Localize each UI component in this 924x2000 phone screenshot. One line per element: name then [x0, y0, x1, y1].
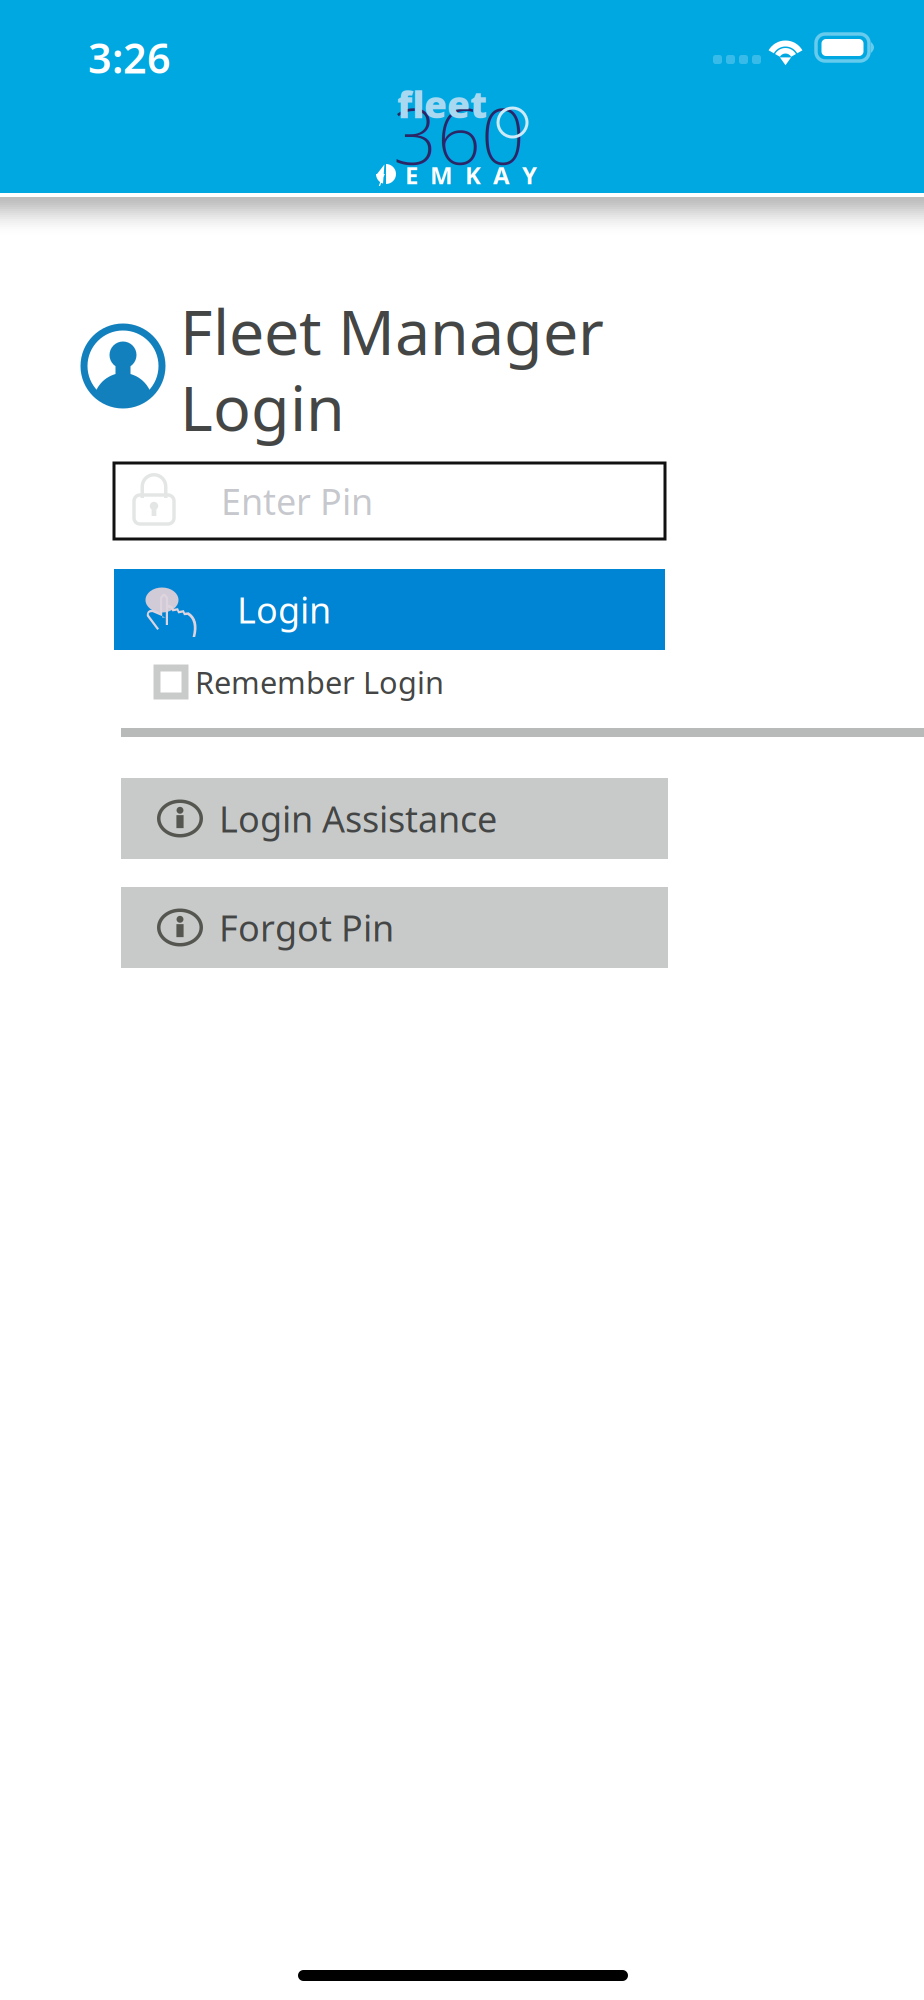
- staticText: E M K A Y: [405, 159, 537, 191]
- staticText: Enter Pin: [221, 477, 373, 525]
- staticText: Fleet Manager: [180, 289, 604, 372]
- staticText: Forgot Pin: [219, 904, 394, 951]
- staticText: fleet: [397, 79, 487, 129]
- staticText: Login: [237, 586, 331, 633]
- staticText: 3:26: [88, 30, 171, 85]
- button[interactable]: Login Assistance: [121, 778, 668, 859]
- staticText: Remember Login: [195, 662, 444, 702]
- staticText: 360: [393, 83, 525, 186]
- button[interactable]: Enter Pin: [114, 463, 665, 539]
- button[interactable]: Login: [114, 569, 665, 650]
- staticText: Login: [180, 365, 345, 448]
- button[interactable]: Forgot Pin: [121, 887, 668, 968]
- button[interactable]: Remember Login: [157, 661, 457, 703]
- staticText: Login Assistance: [219, 795, 497, 842]
